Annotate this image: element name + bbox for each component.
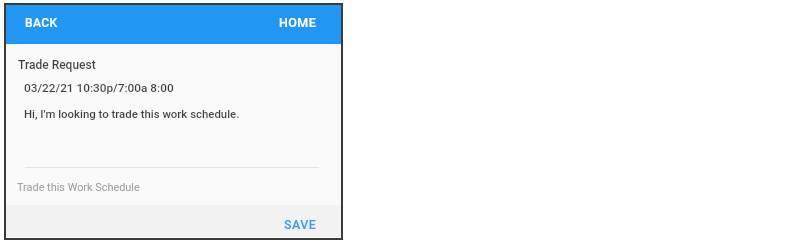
button[interactable]: BACK [6,9,74,41]
button[interactable]: SAVE [268,208,341,235]
button[interactable]: HOME [263,8,341,41]
button[interactable]: Trade this Work Schedule [6,174,341,198]
staticText: Hi, I'm looking to trade this work sched… [24,107,240,120]
staticText: Trade Request [18,58,96,72]
staticText: SAVE [284,217,317,232]
staticText: BACK [25,16,58,30]
staticText: HOME [279,15,317,30]
staticText: Trade this Work Schedule [17,181,140,194]
staticText: 03/22/21 10:30p/7:00a 8:00 [24,81,174,95]
